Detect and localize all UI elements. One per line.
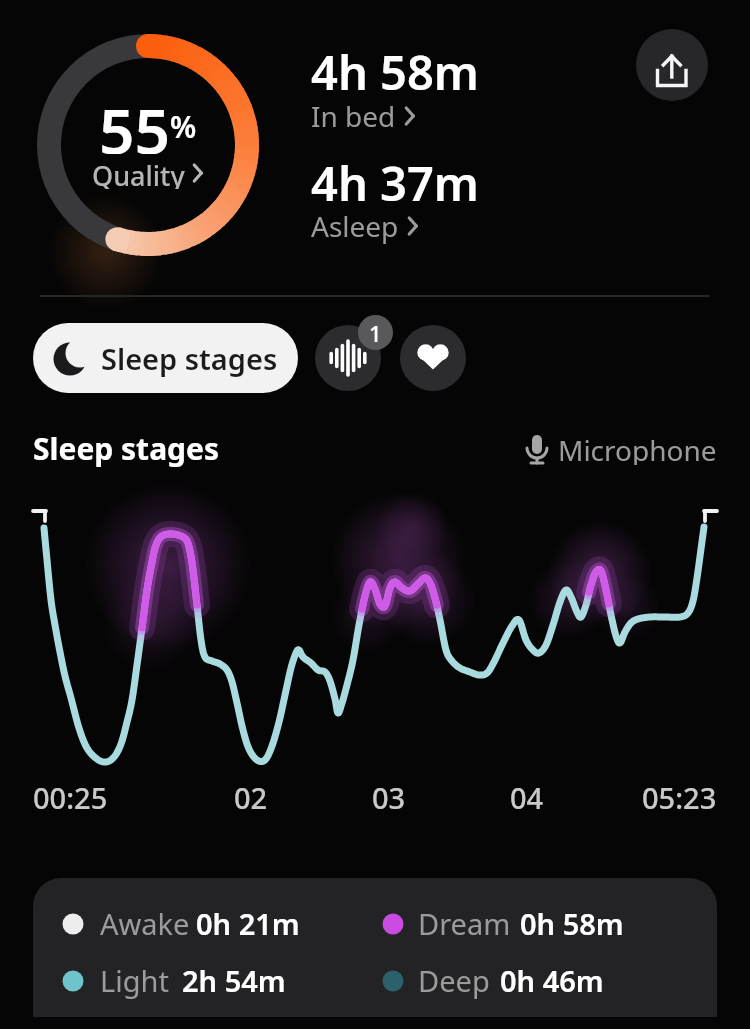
staticText: 4h 37m — [311, 151, 479, 215]
staticText: 05:23 — [642, 778, 717, 812]
staticText: Dream — [418, 904, 511, 943]
staticText: 0h 58m — [520, 904, 624, 943]
staticText: 02 — [234, 778, 268, 812]
staticText: 0h 46m — [500, 961, 604, 1000]
staticText: In bed — [311, 97, 396, 135]
staticText: 03 — [372, 778, 406, 812]
staticText: 4h 58m — [311, 40, 479, 104]
staticText: 00:25 — [33, 778, 108, 817]
staticText: Sleep stages — [101, 339, 278, 378]
staticText: 04 — [510, 778, 544, 812]
staticText: Quality — [92, 157, 185, 189]
staticText: Sleep stages — [33, 428, 220, 469]
staticText: Light — [100, 961, 169, 1000]
staticText: 1 — [369, 318, 382, 348]
staticText: Awake — [100, 904, 190, 943]
staticText: 0h 21m — [196, 904, 300, 943]
staticText: Deep — [418, 961, 490, 1000]
staticText: 55 — [99, 88, 170, 154]
staticText: % — [170, 106, 197, 147]
staticText: Microphone — [558, 431, 717, 465]
staticText: 2h 54m — [182, 961, 286, 1000]
staticText: Asleep — [311, 207, 399, 245]
